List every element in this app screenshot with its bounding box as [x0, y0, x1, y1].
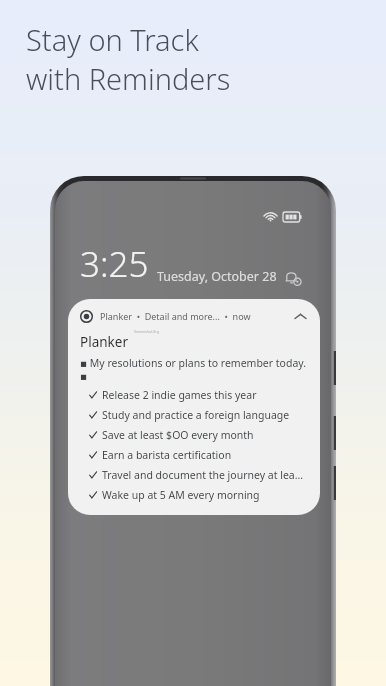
- staticText: Travel and document the journey at least…: [102, 468, 308, 482]
- staticText: Earn a barista certification: [102, 448, 232, 462]
- staticText: ▪ My resolutions or plans to remember to…: [80, 356, 308, 382]
- staticText: Planker: [80, 333, 128, 351]
- button[interactable]: Study and practice a foreign language: [89, 408, 308, 422]
- button[interactable]: Travel and document the journey at least…: [89, 468, 308, 482]
- staticText: Stay on Track: [26, 20, 199, 59]
- staticText: with Reminders: [26, 59, 231, 98]
- staticText: Save at least $OO every month: [102, 428, 254, 442]
- button[interactable]: Earn a barista certification: [89, 448, 308, 462]
- staticText: Study and practice a foreign language: [102, 408, 290, 422]
- button[interactable]: Planker • Detail and more... • now: [68, 299, 320, 515]
- staticText: Planker • Detail and more... • now: [100, 310, 251, 322]
- staticText: 3:25: [80, 240, 149, 288]
- staticText: Screenshot.0rg: [134, 329, 159, 334]
- staticText: Wake up at 5 AM every morning: [102, 488, 260, 502]
- button[interactable]: Wake up at 5 AM every morning: [89, 488, 308, 502]
- staticText: Release 2 indie games this year: [102, 388, 257, 402]
- button[interactable]: Notification settings: [281, 266, 303, 288]
- staticText: Tuesday, October 28: [157, 268, 277, 285]
- button[interactable]: Collapse notification: [292, 308, 308, 324]
- button[interactable]: Release 2 indie games this year: [89, 388, 308, 402]
- button[interactable]: Save at least $OO every month: [89, 428, 308, 442]
